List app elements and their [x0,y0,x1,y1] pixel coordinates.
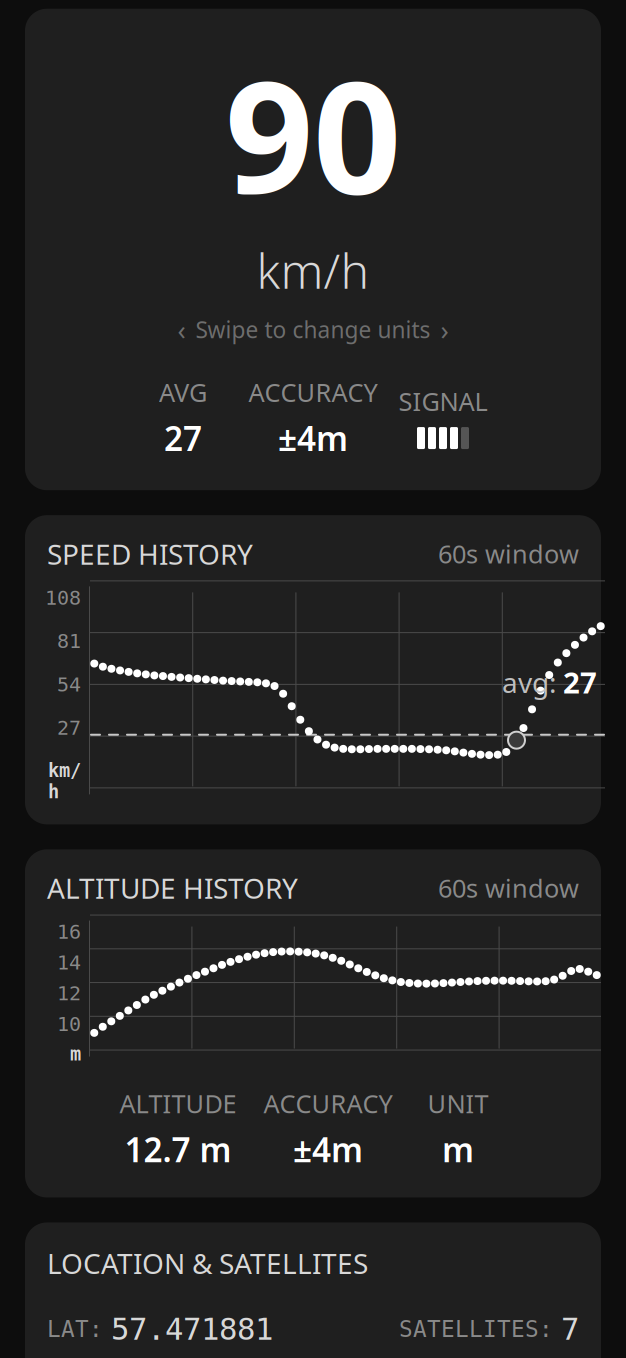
staticText: 54 [57,673,81,696]
staticText: SPEED HISTORY [47,535,253,572]
staticText: ±4m [278,416,348,460]
staticText: 81 [57,630,81,652]
staticText: LAT: [47,1316,103,1342]
staticText: 57.471881 [111,1312,273,1346]
staticText: UNIT [427,1087,488,1120]
staticText: LOCATION & SATELLITES [47,1244,368,1282]
staticText: 27 [563,663,597,702]
staticText: AVG [159,375,207,409]
staticText: 108 [45,586,81,609]
staticText: 10 [57,1013,81,1035]
staticText: 12.7 m [124,1127,231,1171]
staticText: 60s window [438,537,579,571]
staticText: 27 [164,416,202,460]
staticText: 90 [225,31,401,236]
staticText: 7 [561,1312,579,1346]
staticText: km/h [48,760,81,802]
staticText: Swipe to change units [195,314,430,345]
button[interactable]: ALTITUDE HISTORY [25,849,601,1197]
staticText: ‹ [177,312,185,347]
staticText: ACCURACY [248,375,377,409]
staticText: ±4m [293,1127,363,1171]
staticText: 14 [57,951,81,974]
staticText: › [440,312,448,347]
staticText: 27 [57,717,81,739]
staticText: ALTITUDE [119,1087,236,1120]
staticText: SATELLITES: [399,1316,553,1342]
staticText: m [70,1043,81,1065]
staticText: km/h [256,238,369,302]
staticText: ACCURACY [263,1087,392,1120]
staticText: m [442,1127,474,1171]
staticText: 16 [57,921,81,943]
button[interactable]: SPEED HISTORY [25,515,601,824]
staticText: avg: [502,664,557,701]
staticText: 60s window [438,871,579,905]
staticText: SIGNAL [398,384,487,418]
button[interactable]: 90 [25,9,601,490]
button[interactable]: LOCATION & SATELLITES [25,1222,601,1358]
staticText: ALTITUDE HISTORY [47,869,298,907]
staticText: 12 [57,982,81,1005]
